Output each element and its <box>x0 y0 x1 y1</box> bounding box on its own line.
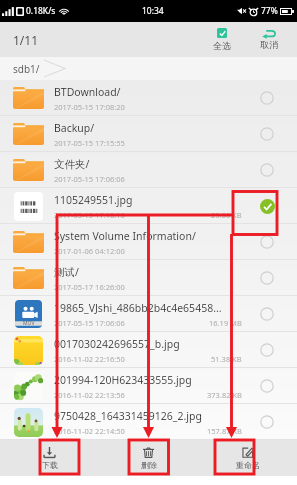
staticText: 2017-05-15 17:06:06 <box>54 174 125 184</box>
staticText: 全选 <box>213 40 231 51</box>
staticText: 19865_VJshi_486bb2b4c4e65458... <box>54 301 222 315</box>
staticText: 2017-05-15 17:08:20 <box>54 102 125 112</box>
button[interactable]: 删除 <box>99 440 198 476</box>
button[interactable]: Cancel <box>257 29 281 51</box>
staticText: 0017030242696557_b.jpg <box>54 337 180 351</box>
button[interactable]: 201994-120H623433555.jpg <box>0 368 297 404</box>
staticText: 0.18K/s <box>26 5 56 17</box>
button[interactable]: 重命名 <box>198 440 297 476</box>
staticText: 16.19 MB <box>209 318 242 328</box>
button[interactable]: 0017030242696557_b.jpg <box>0 332 297 368</box>
staticText: 51.38 KB <box>211 354 242 364</box>
button[interactable]: sdb1/ <box>0 57 297 80</box>
staticText: 2016-11-02 22:13:56 <box>54 390 125 400</box>
staticText: System Volume Information/ <box>54 229 196 243</box>
staticText: 测试/ <box>54 265 79 279</box>
staticText: 9750428_164331459126_2.jpg <box>54 409 202 423</box>
staticText: 2017-05-15 17:18:16 <box>54 210 125 220</box>
button[interactable]: Backup/ <box>0 116 297 152</box>
staticText: 取消 <box>260 39 278 50</box>
staticText: 删除 <box>141 460 157 470</box>
staticText: 1/11 <box>13 32 39 48</box>
staticText: 157.87 KB <box>207 426 242 436</box>
button[interactable]: 文件夹/ <box>0 152 297 188</box>
button[interactable]: Select all <box>210 27 234 52</box>
button[interactable]: System Volume Information/ <box>0 224 297 260</box>
staticText: 2016-11-02 22:16:50 <box>54 354 125 364</box>
button[interactable]: 1105249551.jpg <box>0 188 297 224</box>
staticText: 2016-11-02 22:14:50 <box>54 426 125 436</box>
staticText: 77% <box>261 5 278 17</box>
staticText: 201994-120H623433555.jpg <box>54 373 192 387</box>
staticText: 2017-01-06 04:12:00 <box>54 246 125 256</box>
staticText: 373.82 KB <box>207 390 242 400</box>
button[interactable]: BTDownload/ <box>0 80 297 116</box>
button[interactable]: 9750428_164331459126_2.jpg <box>0 404 297 440</box>
staticText: 1105249551.jpg <box>54 193 133 207</box>
staticText: sdb1/ <box>13 62 40 76</box>
staticText: MOV <box>23 320 35 327</box>
staticText: Backup/ <box>54 121 95 135</box>
staticText: BTDownload/ <box>54 85 121 99</box>
staticText: 重命名 <box>236 460 260 470</box>
button[interactable]: 测试/ <box>0 260 297 296</box>
staticText: 下载 <box>42 460 58 470</box>
button[interactable]: MOV <box>0 296 297 332</box>
staticText: 2017-05-17 16:26:00 <box>54 282 125 292</box>
button[interactable]: 下载 <box>0 440 99 476</box>
staticText: 2017-05-15 17:06:06 <box>54 318 125 328</box>
staticText: 文件夹/ <box>54 157 90 171</box>
staticText: 10:34 <box>142 5 164 17</box>
staticText: 2017-05-15 17:15:55 <box>54 138 125 148</box>
staticText: 29.66 KB <box>211 210 242 220</box>
